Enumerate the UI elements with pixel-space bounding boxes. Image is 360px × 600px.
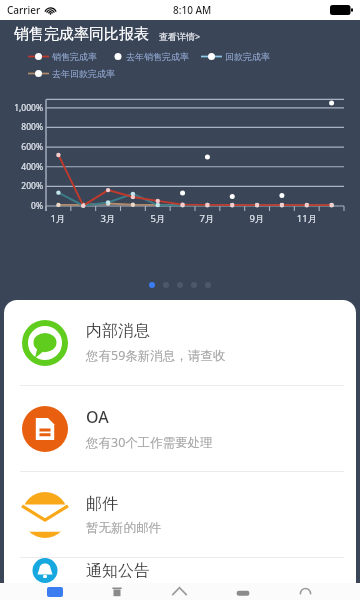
staticText: 您有30个工作需要处理 [86, 434, 213, 451]
staticText: 5月 [145, 212, 171, 225]
staticText: 11月 [294, 212, 320, 225]
staticText: 600% [0, 141, 43, 153]
staticText: OA [86, 406, 109, 428]
staticText: 400% [0, 161, 43, 173]
button[interactable]: 查看详情> [159, 30, 201, 44]
staticText: 8:10 AM [173, 3, 212, 17]
staticText: 您有59条新消息，请查收 [86, 347, 226, 364]
staticText: 200% [0, 180, 43, 192]
button[interactable]: 通知公告 [4, 558, 356, 583]
staticText: 销售完成率同比报表 [14, 25, 149, 44]
staticText: 邮件 [86, 494, 118, 514]
staticText: 查看详情> [159, 30, 201, 42]
staticText: 回款完成率 [225, 51, 270, 62]
staticText: Carrier [7, 3, 41, 17]
staticText: 暂无新的邮件 [86, 520, 161, 536]
button[interactable]: Page 1 [149, 282, 155, 288]
button[interactable]: Page 5 [205, 282, 211, 288]
button[interactable]: 内部消息 [4, 300, 356, 385]
staticText: 1,000% [0, 102, 43, 114]
button[interactable]: 邮件 [4, 472, 356, 557]
staticText: 1月 [45, 212, 71, 225]
staticText: 3月 [95, 212, 121, 225]
staticText: 销售完成率 [52, 51, 97, 62]
button[interactable]: Keyboard [235, 584, 251, 600]
button[interactable]: Page 3 [177, 282, 183, 288]
button[interactable]: OA [4, 386, 356, 471]
staticText: 0% [0, 200, 43, 212]
staticText: 内部消息 [86, 321, 150, 341]
staticText: 去年销售完成率 [126, 51, 189, 62]
staticText: 9月 [244, 212, 270, 225]
button[interactable]: Page 2 [163, 282, 169, 288]
button[interactable]: Back [171, 583, 188, 600]
button[interactable]: Recent apps [47, 587, 63, 597]
staticText: 800% [0, 121, 43, 133]
staticText: 7月 [194, 212, 220, 225]
button[interactable]: Page 4 [191, 282, 197, 288]
staticText: 通知公告 [86, 561, 150, 581]
button[interactable]: Home [298, 584, 313, 599]
staticText: 去年回款完成率 [52, 68, 115, 79]
button[interactable]: Delete [110, 585, 124, 599]
